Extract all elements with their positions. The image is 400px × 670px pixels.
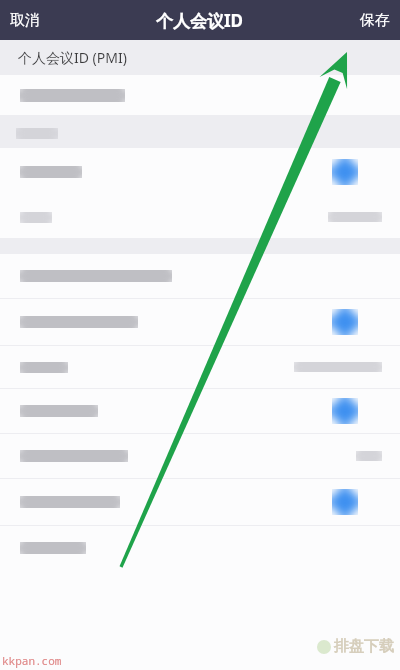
- button[interactable]: [0, 75, 400, 115]
- staticText: 排盘下载: [334, 637, 394, 656]
- staticText: 个人会议ID: [156, 9, 244, 32]
- other: Annotation arrow pointing to 保存: [0, 0, 400, 670]
- button[interactable]: [0, 148, 400, 196]
- staticText: 保存: [360, 11, 390, 30]
- button[interactable]: 保存: [350, 2, 400, 39]
- button[interactable]: [0, 196, 400, 238]
- button[interactable]: [0, 526, 400, 570]
- button[interactable]: [0, 254, 400, 298]
- button[interactable]: [0, 299, 400, 345]
- button[interactable]: [0, 479, 400, 525]
- staticText: 取消: [10, 11, 40, 30]
- button[interactable]: [0, 346, 400, 388]
- button[interactable]: [0, 389, 400, 433]
- button[interactable]: [0, 118, 400, 148]
- button[interactable]: 取消: [0, 2, 50, 39]
- button[interactable]: [0, 434, 400, 478]
- staticText: kkpan.com: [2, 653, 62, 668]
- staticText: 个人会议ID (PMI): [18, 48, 127, 67]
